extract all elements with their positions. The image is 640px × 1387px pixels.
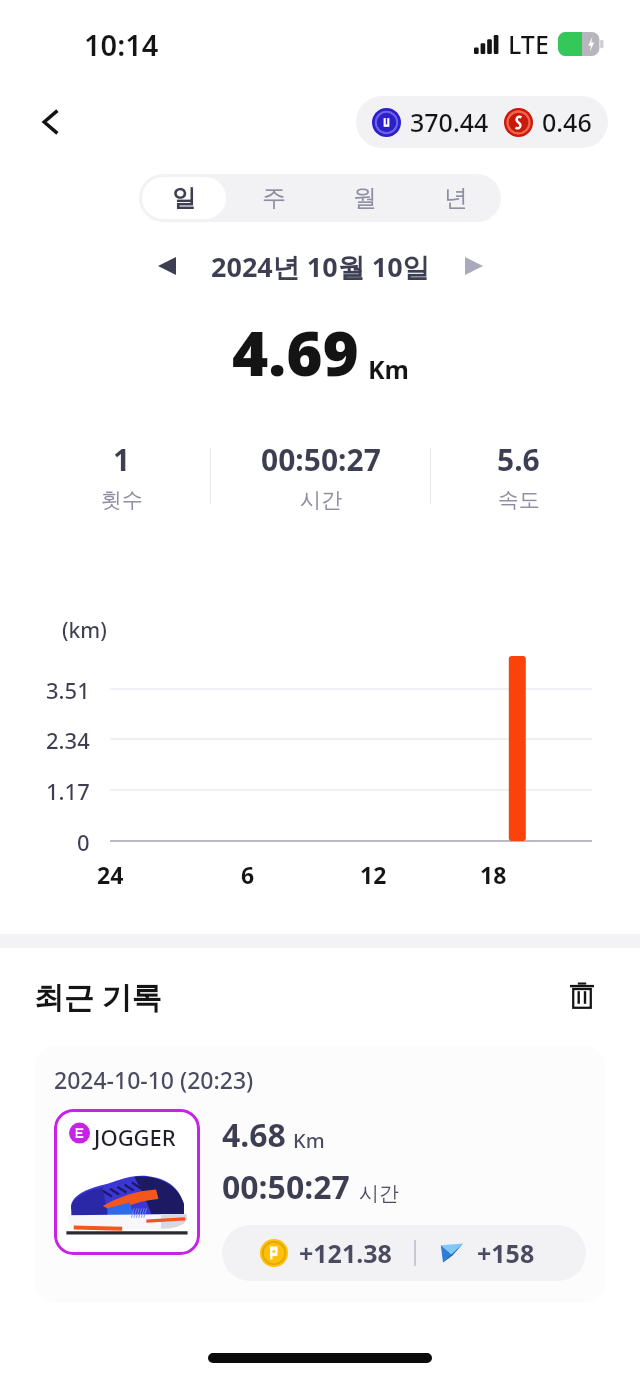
button[interactable]: +121.38 (222, 1225, 586, 1281)
button[interactable]: 370.44 (356, 96, 608, 148)
staticText: LTE (508, 27, 549, 61)
staticText: 년 (444, 183, 468, 213)
staticText: 4.68 (222, 1113, 286, 1157)
button[interactable]: 주 (232, 177, 316, 219)
staticText: 00:50:27 (261, 439, 381, 480)
button[interactable]: 1 (34, 420, 606, 532)
staticText: 최근 기록 (34, 976, 162, 1017)
staticText: 횟수 (101, 487, 143, 513)
staticText: Km (368, 352, 409, 386)
staticText: 시간 (359, 1181, 399, 1206)
staticText: 3.51 (46, 675, 90, 705)
staticText: 속도 (498, 487, 540, 513)
staticText: 5.6 (497, 439, 540, 480)
staticText: 6 (241, 859, 255, 890)
staticText: 시간 (300, 487, 342, 513)
staticText: 월 (353, 183, 377, 213)
staticText: 4.69 (232, 310, 359, 394)
staticText: 12 (360, 859, 387, 890)
staticText: 0.46 (542, 105, 592, 139)
button[interactable]: Delete records (558, 972, 606, 1020)
staticText: 2024-10-10 (20:23) (54, 1064, 254, 1095)
staticText: 2024년 10월 10일 (211, 248, 430, 285)
staticText: 2.34 (46, 725, 90, 755)
staticText: 10:14 (84, 25, 159, 64)
staticText: 1.17 (46, 776, 90, 806)
staticText: +158 (477, 1236, 535, 1270)
button[interactable]: 일 (142, 177, 226, 219)
staticText: +121.38 (299, 1236, 392, 1270)
staticText: 0 (77, 827, 90, 857)
staticText: 1 (113, 439, 131, 480)
staticText: 370.44 (410, 105, 489, 139)
button[interactable]: Next day (452, 244, 496, 288)
button[interactable]: 월 (322, 177, 407, 219)
staticText: 18 (480, 859, 507, 890)
button[interactable]: Back (26, 96, 78, 148)
staticText: JOGGER (94, 1122, 176, 1152)
button[interactable]: 년 (413, 177, 498, 219)
staticText: (km) (62, 616, 107, 645)
staticText: Km (293, 1127, 325, 1154)
staticText: 주 (262, 183, 286, 213)
button[interactable]: Previous day (145, 244, 189, 288)
button[interactable]: JOGGER (54, 1109, 200, 1255)
button[interactable]: 2024-10-10 (20:23) (34, 1046, 606, 1303)
staticText: 24 (97, 859, 124, 890)
staticText: 일 (172, 183, 196, 213)
staticText: 00:50:27 (222, 1165, 350, 1209)
